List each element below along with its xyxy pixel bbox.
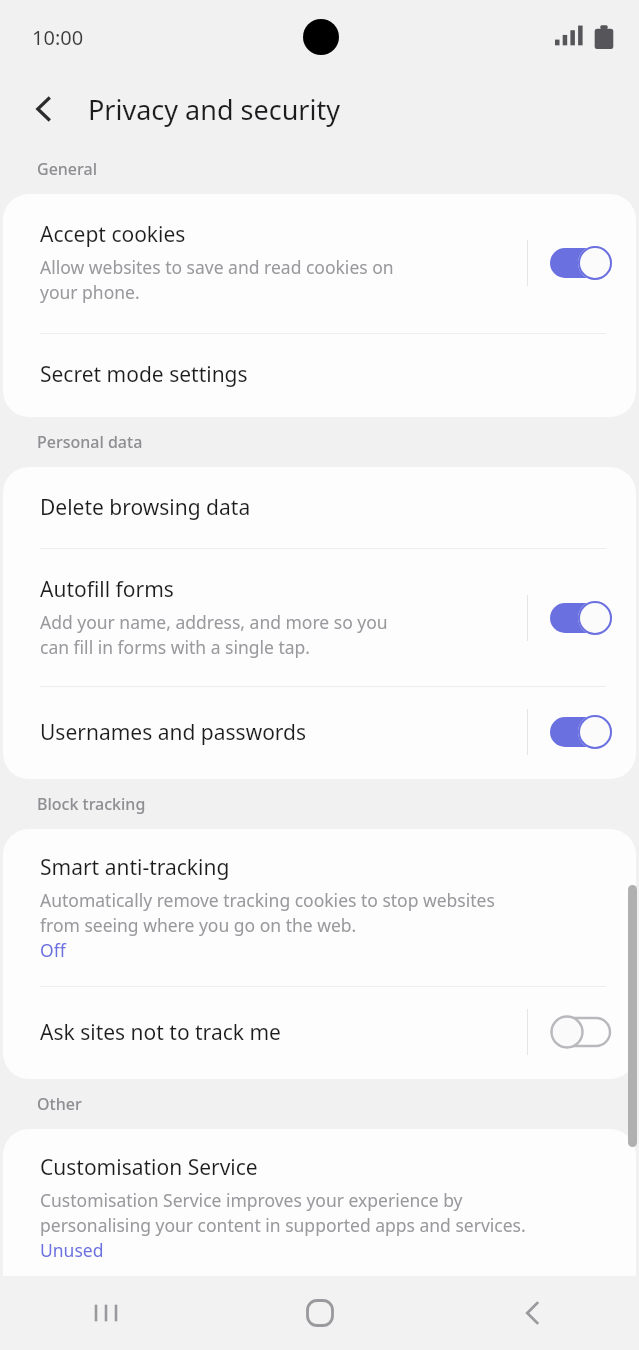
staticText: Block tracking bbox=[37, 793, 146, 815]
staticText: Allow websites to save and read cookies … bbox=[40, 255, 394, 305]
button[interactable]: Accept cookies bbox=[3, 194, 636, 333]
button[interactable] bbox=[548, 599, 614, 637]
staticText: 10:00 bbox=[32, 24, 84, 51]
staticText: Personal data bbox=[37, 431, 143, 453]
staticText: General bbox=[37, 158, 97, 180]
button[interactable]: Usernames and passwords bbox=[3, 687, 636, 779]
staticText: Secret mode settings bbox=[40, 360, 248, 389]
staticText: Smart anti-tracking bbox=[40, 853, 230, 882]
button[interactable]: Home bbox=[213, 1276, 426, 1350]
button[interactable] bbox=[548, 244, 614, 282]
button[interactable] bbox=[548, 713, 614, 751]
staticText: Customisation Service bbox=[40, 1153, 258, 1182]
button[interactable]: Autofill forms bbox=[3, 549, 636, 686]
staticText: Privacy and security bbox=[88, 91, 340, 128]
staticText: Automatically remove tracking cookies to… bbox=[40, 888, 495, 938]
staticText: Delete browsing data bbox=[40, 493, 251, 522]
button[interactable]: Back bbox=[20, 85, 68, 133]
button[interactable]: Ask sites not to track me bbox=[3, 987, 636, 1079]
staticText: Ask sites not to track me bbox=[40, 1018, 281, 1047]
staticText: Unused bbox=[40, 1238, 104, 1262]
button[interactable]: Smart anti-tracking bbox=[3, 829, 636, 986]
button[interactable]: Secret mode settings bbox=[3, 334, 636, 417]
button[interactable]: Delete browsing data bbox=[3, 467, 636, 548]
staticText: Autofill forms bbox=[40, 575, 174, 604]
button[interactable]: Customisation Service bbox=[3, 1129, 636, 1302]
staticText: Other bbox=[37, 1093, 82, 1115]
button[interactable]: Recent apps bbox=[0, 1276, 213, 1350]
staticText: Off bbox=[40, 938, 66, 962]
staticText: Add your name, address, and more so you … bbox=[40, 610, 388, 660]
button[interactable] bbox=[548, 1013, 614, 1051]
button[interactable]: Back bbox=[426, 1276, 639, 1350]
staticText: Accept cookies bbox=[40, 220, 186, 249]
staticText: Customisation Service improves your expe… bbox=[40, 1188, 526, 1238]
staticText: Usernames and passwords bbox=[40, 718, 307, 747]
